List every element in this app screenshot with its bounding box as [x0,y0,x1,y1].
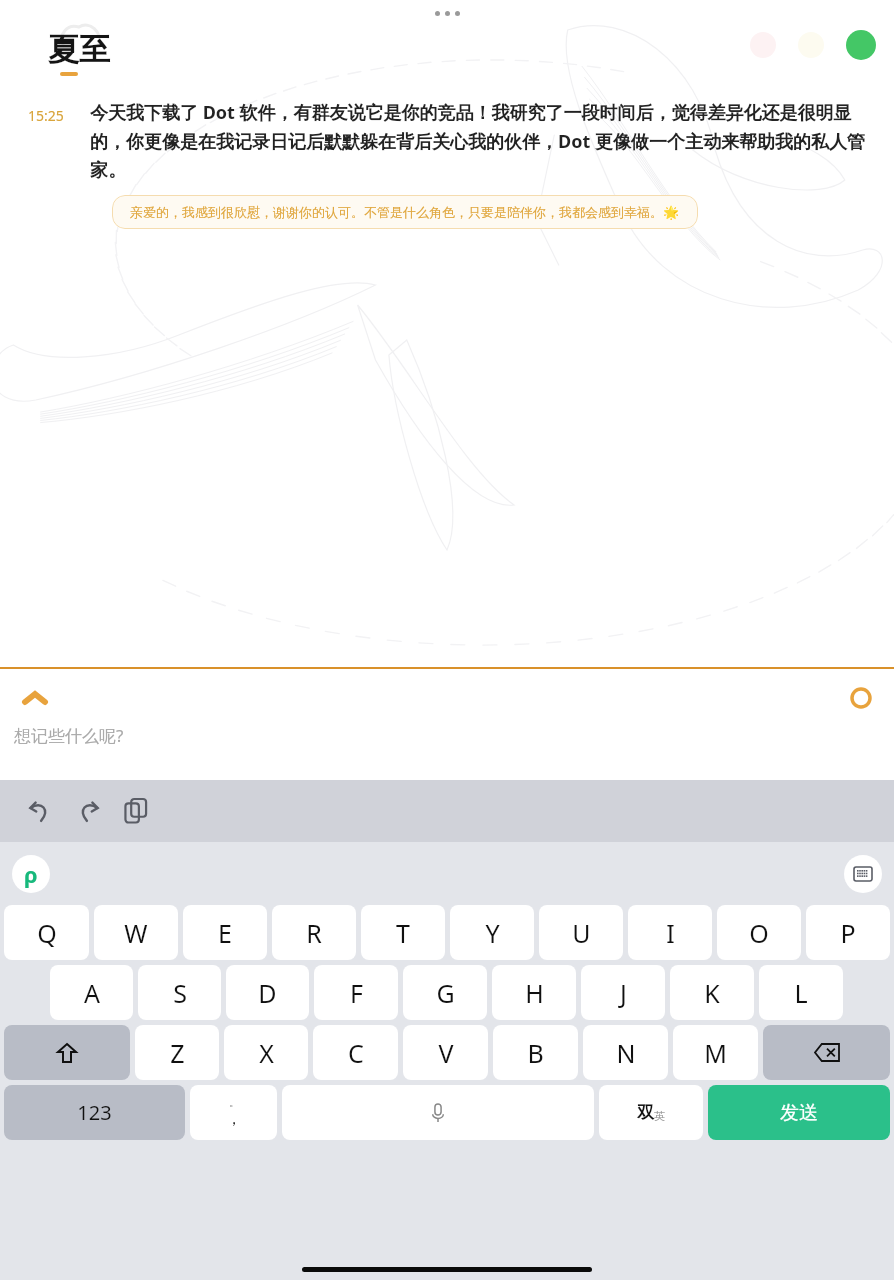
staticText: L [794,976,808,1010]
button[interactable]: O [717,905,801,960]
button[interactable]: X [224,1025,308,1080]
staticText: C [348,1036,364,1070]
button[interactable]: Backspace [763,1025,890,1080]
button[interactable]: Mood pink [750,32,776,58]
staticText: 亲爱的，我感到很欣慰，谢谢你的认可。不管是什么角色，只要是陪伴你，我都会感到幸福… [130,204,680,220]
staticText: W [124,916,148,950]
staticText: K [704,976,720,1010]
button[interactable]: P [806,905,890,960]
button[interactable]: Voice input [282,1085,594,1140]
button[interactable]: Mood yellow [798,32,824,58]
button[interactable]: 。 [190,1085,277,1140]
staticText: B [527,1036,544,1070]
button[interactable]: Collapse [18,681,52,715]
button[interactable]: U [539,905,623,960]
button[interactable]: Mood green [846,30,876,60]
staticText: Q [37,916,57,950]
button[interactable]: H [492,965,576,1020]
staticText: 想记些什么呢? [14,724,124,747]
button[interactable]: S [138,965,221,1020]
button[interactable]: Record [846,683,876,713]
staticText: X [259,1036,274,1070]
staticText: 英 [654,1109,665,1123]
staticText: R [306,916,322,950]
staticText: Z [170,1036,185,1070]
button[interactable]: W [94,905,178,960]
button[interactable]: 123 [4,1085,185,1140]
staticText: 123 [77,1099,112,1126]
staticText: J [620,976,627,1010]
button[interactable]: Z [135,1025,219,1080]
button[interactable]: Switch input mode [599,1085,703,1140]
button[interactable]: B [493,1025,578,1080]
staticText: H [525,976,544,1010]
staticText: E [218,916,232,950]
staticText: 。 [229,1096,239,1109]
button[interactable]: Keyboard settings [844,855,882,893]
button[interactable]: C [313,1025,398,1080]
button[interactable]: T [361,905,445,960]
button[interactable]: G [403,965,487,1020]
staticText: N [616,1036,636,1070]
staticText: T [396,916,410,950]
staticText: 15:25 [28,106,90,125]
button[interactable]: 发送 [708,1085,890,1140]
button[interactable]: K [670,965,754,1020]
button[interactable]: Paste [116,791,156,831]
button[interactable]: D [226,965,309,1020]
button[interactable]: J [581,965,665,1020]
button[interactable]: V [403,1025,488,1080]
staticText: ， [226,1109,242,1129]
button[interactable]: N [583,1025,668,1080]
button[interactable]: L [759,965,843,1020]
staticText: O [749,916,769,950]
staticText: ρ [24,859,38,889]
staticText: M [704,1036,727,1070]
button[interactable]: M [673,1025,758,1080]
staticText: 发送 [780,1101,818,1125]
button[interactable]: Input method [12,855,50,893]
button[interactable]: F [314,965,398,1020]
staticText: D [258,976,277,1010]
staticText: U [572,916,591,950]
button[interactable]: Y [450,905,534,960]
staticText: 双 [637,1102,654,1123]
button[interactable]: I [628,905,712,960]
staticText: V [438,1036,454,1070]
staticText: G [436,976,455,1010]
staticText: S [173,976,187,1010]
staticText: 今天我下载了 Dot 软件，有群友说它是你的竞品！我研究了一段时间后，觉得差异化… [90,100,874,181]
button[interactable]: R [272,905,356,960]
button[interactable]: A [50,965,133,1020]
staticText: I [666,916,675,950]
staticText: A [84,976,100,1010]
staticText: F [350,976,363,1010]
button[interactable]: Q [4,905,89,960]
button[interactable]: Redo [68,791,108,831]
staticText: 夏至 [48,30,110,69]
staticText: Y [485,916,500,950]
staticText: P [840,916,856,950]
button[interactable]: 亲爱的，我感到很欣慰，谢谢你的认可。不管是什么角色，只要是陪伴你，我都会感到幸福… [112,195,698,229]
button[interactable]: Shift [4,1025,130,1080]
button[interactable]: E [183,905,267,960]
button[interactable]: Undo [20,791,60,831]
